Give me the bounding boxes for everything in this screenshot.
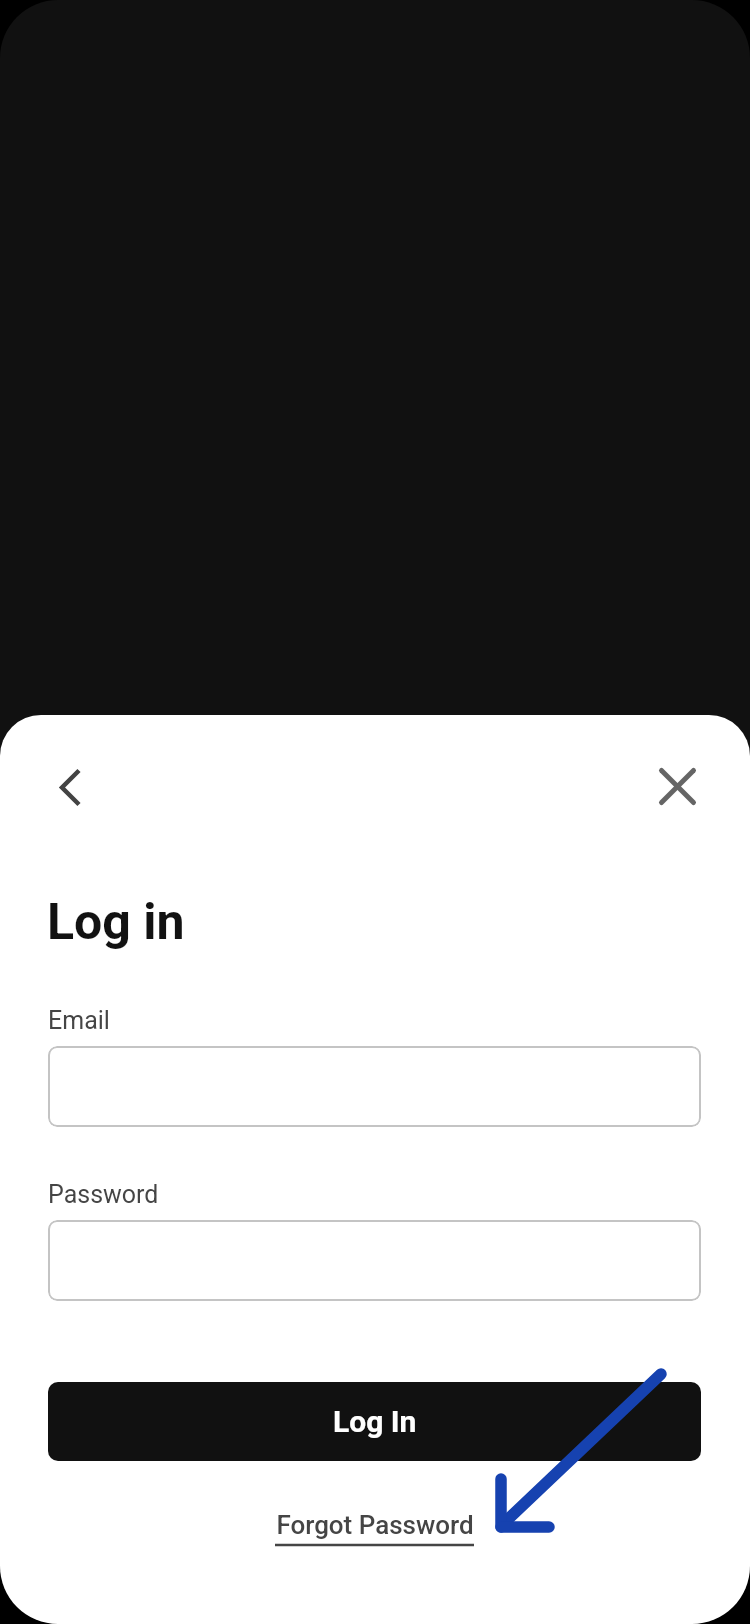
button[interactable]: Log In xyxy=(48,1382,701,1461)
staticText: Log In xyxy=(333,1404,417,1439)
staticText: Email xyxy=(48,1006,110,1035)
button[interactable]: Forgot Password xyxy=(250,1510,500,1560)
staticText: Password xyxy=(48,1180,159,1209)
staticText: Forgot Password xyxy=(250,1510,500,1540)
staticText: Log in xyxy=(47,893,185,952)
button[interactable] xyxy=(48,1046,701,1127)
button[interactable]: Back xyxy=(44,761,97,814)
button[interactable]: Close xyxy=(651,760,704,813)
button[interactable] xyxy=(48,1220,701,1301)
